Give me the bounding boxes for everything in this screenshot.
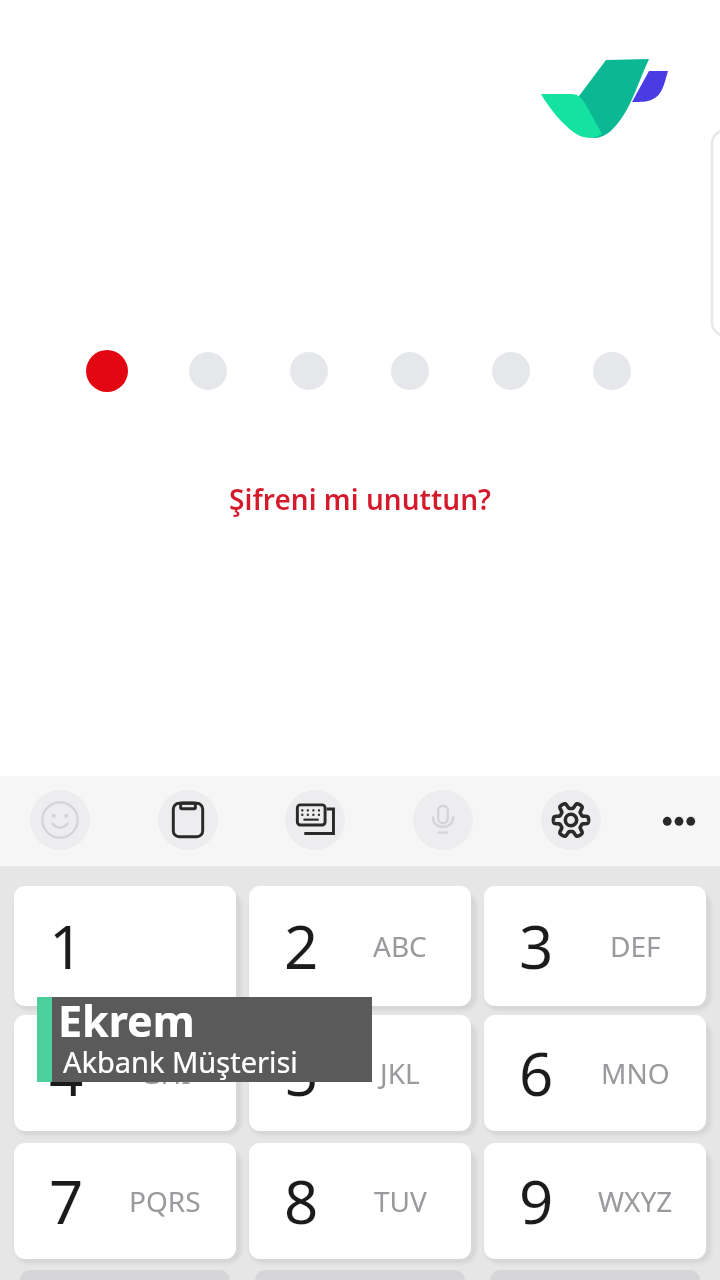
staticText: JKL	[380, 1054, 420, 1092]
button[interactable]: Emoji	[30, 790, 90, 850]
staticText: 9	[519, 1160, 554, 1242]
button[interactable]: Voice input	[413, 790, 473, 850]
staticText: WXYZ	[598, 1182, 673, 1220]
button[interactable]: 9	[484, 1143, 706, 1259]
staticText: 8	[284, 1160, 319, 1242]
staticText: Ekrem	[58, 991, 195, 1050]
staticText: 1	[49, 905, 84, 987]
button[interactable]: Settings	[541, 790, 601, 850]
button[interactable]: 4	[14, 1015, 236, 1131]
button[interactable]: 2	[249, 886, 471, 1006]
staticText: 4	[49, 1032, 84, 1114]
button[interactable]: Clipboard	[158, 790, 218, 850]
staticText: ABC	[373, 927, 427, 965]
staticText: 7	[49, 1160, 84, 1242]
staticText: 2	[284, 905, 319, 987]
button[interactable]: Keyboard modes	[285, 790, 345, 850]
staticText: Akbank Müşterisi	[63, 1042, 298, 1081]
button[interactable]: 5	[249, 1015, 471, 1131]
staticText: TUV	[374, 1182, 427, 1220]
button[interactable]: Şifreni mi unuttun?	[0, 480, 720, 518]
button[interactable]: PIN entry field	[60, 330, 660, 412]
button[interactable]: 3	[484, 886, 706, 1006]
button[interactable]: 8	[249, 1143, 471, 1259]
staticText: 5	[284, 1032, 319, 1114]
staticText: 6	[519, 1032, 554, 1114]
button[interactable]: Ekrem	[37, 997, 372, 1082]
staticText: DEF	[610, 927, 661, 965]
other: App logo	[540, 59, 669, 138]
button[interactable]: 1	[14, 886, 236, 1006]
button[interactable]: More options	[649, 790, 709, 850]
staticText: MNO	[601, 1054, 670, 1092]
staticText: GHI	[140, 1054, 191, 1092]
button[interactable]: 7	[14, 1143, 236, 1259]
staticText: Şifreni mi unuttun?	[229, 480, 491, 518]
staticText: 3	[519, 905, 554, 987]
staticText: PQRS	[129, 1182, 201, 1220]
button[interactable]: 6	[484, 1015, 706, 1131]
